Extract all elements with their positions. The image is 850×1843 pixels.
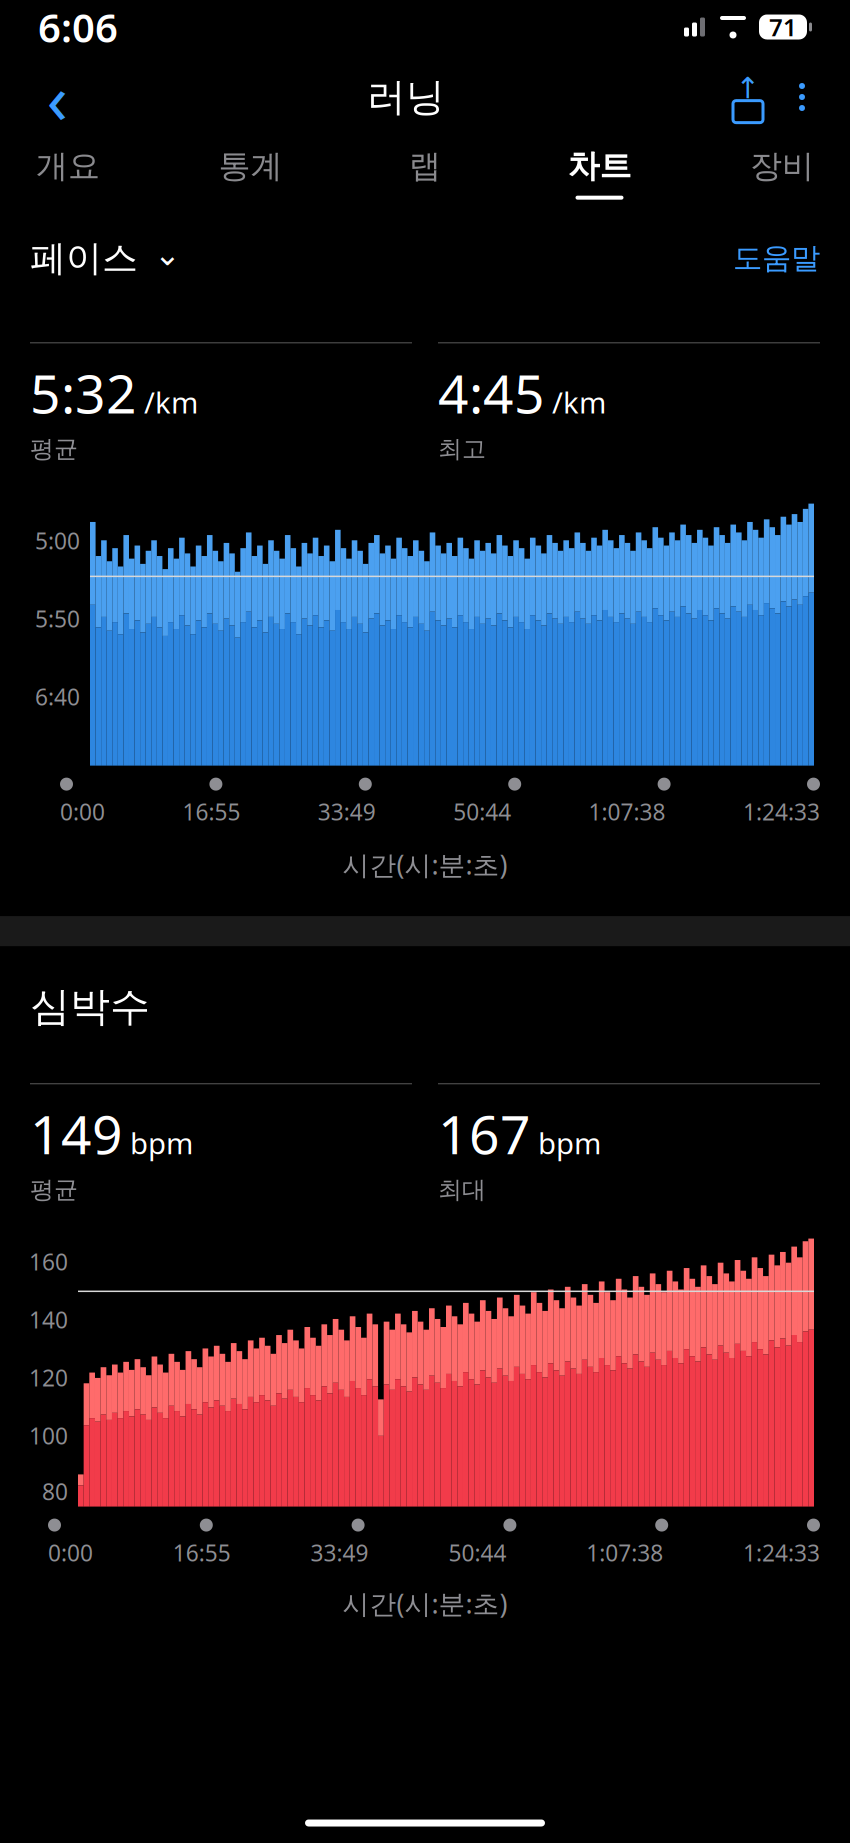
staticText: 140 bbox=[29, 1305, 68, 1335]
staticText: 100 bbox=[29, 1421, 68, 1451]
button[interactable]: 개요 bbox=[36, 140, 100, 206]
staticText: 1:07:38 bbox=[586, 1538, 663, 1568]
staticText: 120 bbox=[29, 1363, 68, 1393]
staticText: 페이스 bbox=[30, 236, 138, 280]
button[interactable]: 차트 bbox=[567, 140, 631, 206]
staticText: 0:00 bbox=[48, 1538, 93, 1568]
staticText: 50:44 bbox=[453, 797, 511, 827]
staticText: 160 bbox=[29, 1247, 68, 1277]
button[interactable]: 장비 bbox=[750, 140, 814, 206]
staticText: 33:49 bbox=[311, 1538, 369, 1568]
staticText: 랩 bbox=[409, 146, 441, 186]
staticText: 71 bbox=[769, 11, 797, 43]
staticText: 1:07:38 bbox=[589, 797, 666, 827]
staticText: 50:44 bbox=[448, 1538, 506, 1568]
staticText: 5:50 bbox=[35, 604, 80, 634]
staticText: 1:24:33 bbox=[743, 797, 820, 827]
button[interactable]: 랩 bbox=[401, 140, 449, 206]
staticText: 16:55 bbox=[173, 1538, 231, 1568]
button[interactable]: 도움말 bbox=[733, 234, 820, 282]
staticText: 최고 bbox=[438, 434, 486, 464]
staticText: /km bbox=[144, 383, 198, 422]
staticText: 평균 bbox=[30, 434, 78, 464]
staticText: 심박수 bbox=[30, 982, 150, 1031]
staticText: ↑ bbox=[735, 71, 760, 105]
button[interactable]: 페이스 bbox=[30, 230, 181, 286]
staticText: 6:06 bbox=[38, 0, 118, 53]
staticText: 16:55 bbox=[182, 797, 240, 827]
staticText: 러닝 bbox=[367, 73, 445, 121]
staticText: 통계 bbox=[218, 146, 282, 186]
staticText: 시간(시:분:초) bbox=[342, 1586, 507, 1621]
staticText: 최대 bbox=[438, 1175, 486, 1205]
staticText: ‹ bbox=[46, 51, 67, 143]
staticText: 0:00 bbox=[60, 797, 105, 827]
staticText: 시간(시:분:초) bbox=[342, 847, 507, 882]
button[interactable]: Share bbox=[720, 67, 776, 127]
staticText: 차트 bbox=[567, 146, 631, 186]
staticText: 149 bbox=[30, 1098, 123, 1169]
button[interactable]: More options bbox=[776, 67, 828, 127]
staticText: ⌄ bbox=[154, 236, 181, 272]
staticText: bpm bbox=[538, 1123, 601, 1162]
staticText: 개요 bbox=[36, 146, 100, 186]
staticText: 167 bbox=[438, 1098, 531, 1169]
staticText: 5:00 bbox=[35, 526, 80, 556]
staticText: 4:45 bbox=[438, 357, 545, 428]
staticText: 1:24:33 bbox=[743, 1538, 820, 1568]
button[interactable]: 통계 bbox=[218, 140, 282, 206]
staticText: /km bbox=[552, 383, 606, 422]
staticText: 평균 bbox=[30, 1175, 78, 1205]
staticText: 33:49 bbox=[318, 797, 376, 827]
staticText: 80 bbox=[42, 1476, 68, 1507]
button[interactable]: Back bbox=[22, 62, 92, 132]
staticText: 도움말 bbox=[733, 240, 820, 276]
staticText: 5:32 bbox=[30, 357, 137, 428]
staticText: 장비 bbox=[750, 146, 814, 186]
staticText: bpm bbox=[130, 1123, 193, 1162]
staticText: 6:40 bbox=[35, 682, 80, 712]
